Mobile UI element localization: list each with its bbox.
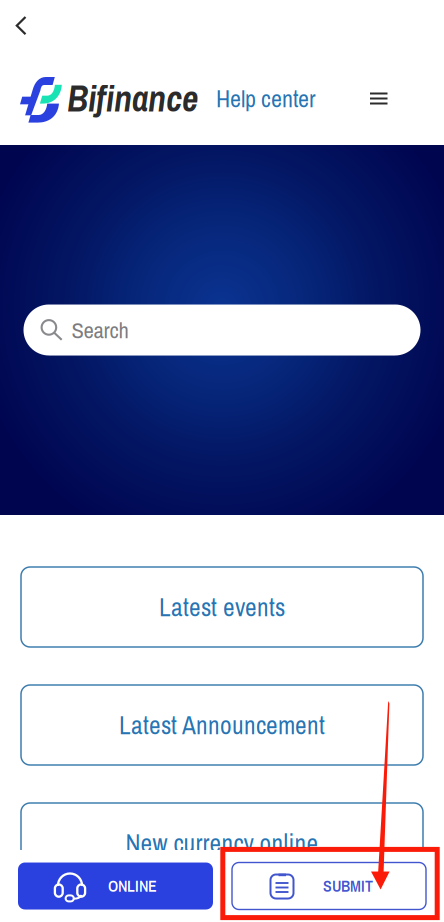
button[interactable]: Back (0, 8, 41, 44)
staticText: SUBMIT (323, 875, 373, 897)
staticText: Latest Announcement (119, 708, 325, 742)
button[interactable]: New currency online (21, 803, 423, 883)
button[interactable]: ONLINE (18, 862, 213, 909)
staticText: Bifinance (67, 74, 198, 123)
button[interactable]: Menu (350, 74, 444, 122)
staticText: ONLINE (108, 875, 157, 897)
staticText: Latest events (159, 590, 285, 624)
button[interactable]: Latest events (21, 567, 423, 647)
staticText: Help center (216, 82, 316, 115)
button[interactable]: Latest Announcement (21, 685, 423, 765)
staticText: Search (71, 315, 128, 345)
staticText: New currency online (125, 826, 318, 860)
button[interactable]: SUBMIT (232, 862, 426, 909)
